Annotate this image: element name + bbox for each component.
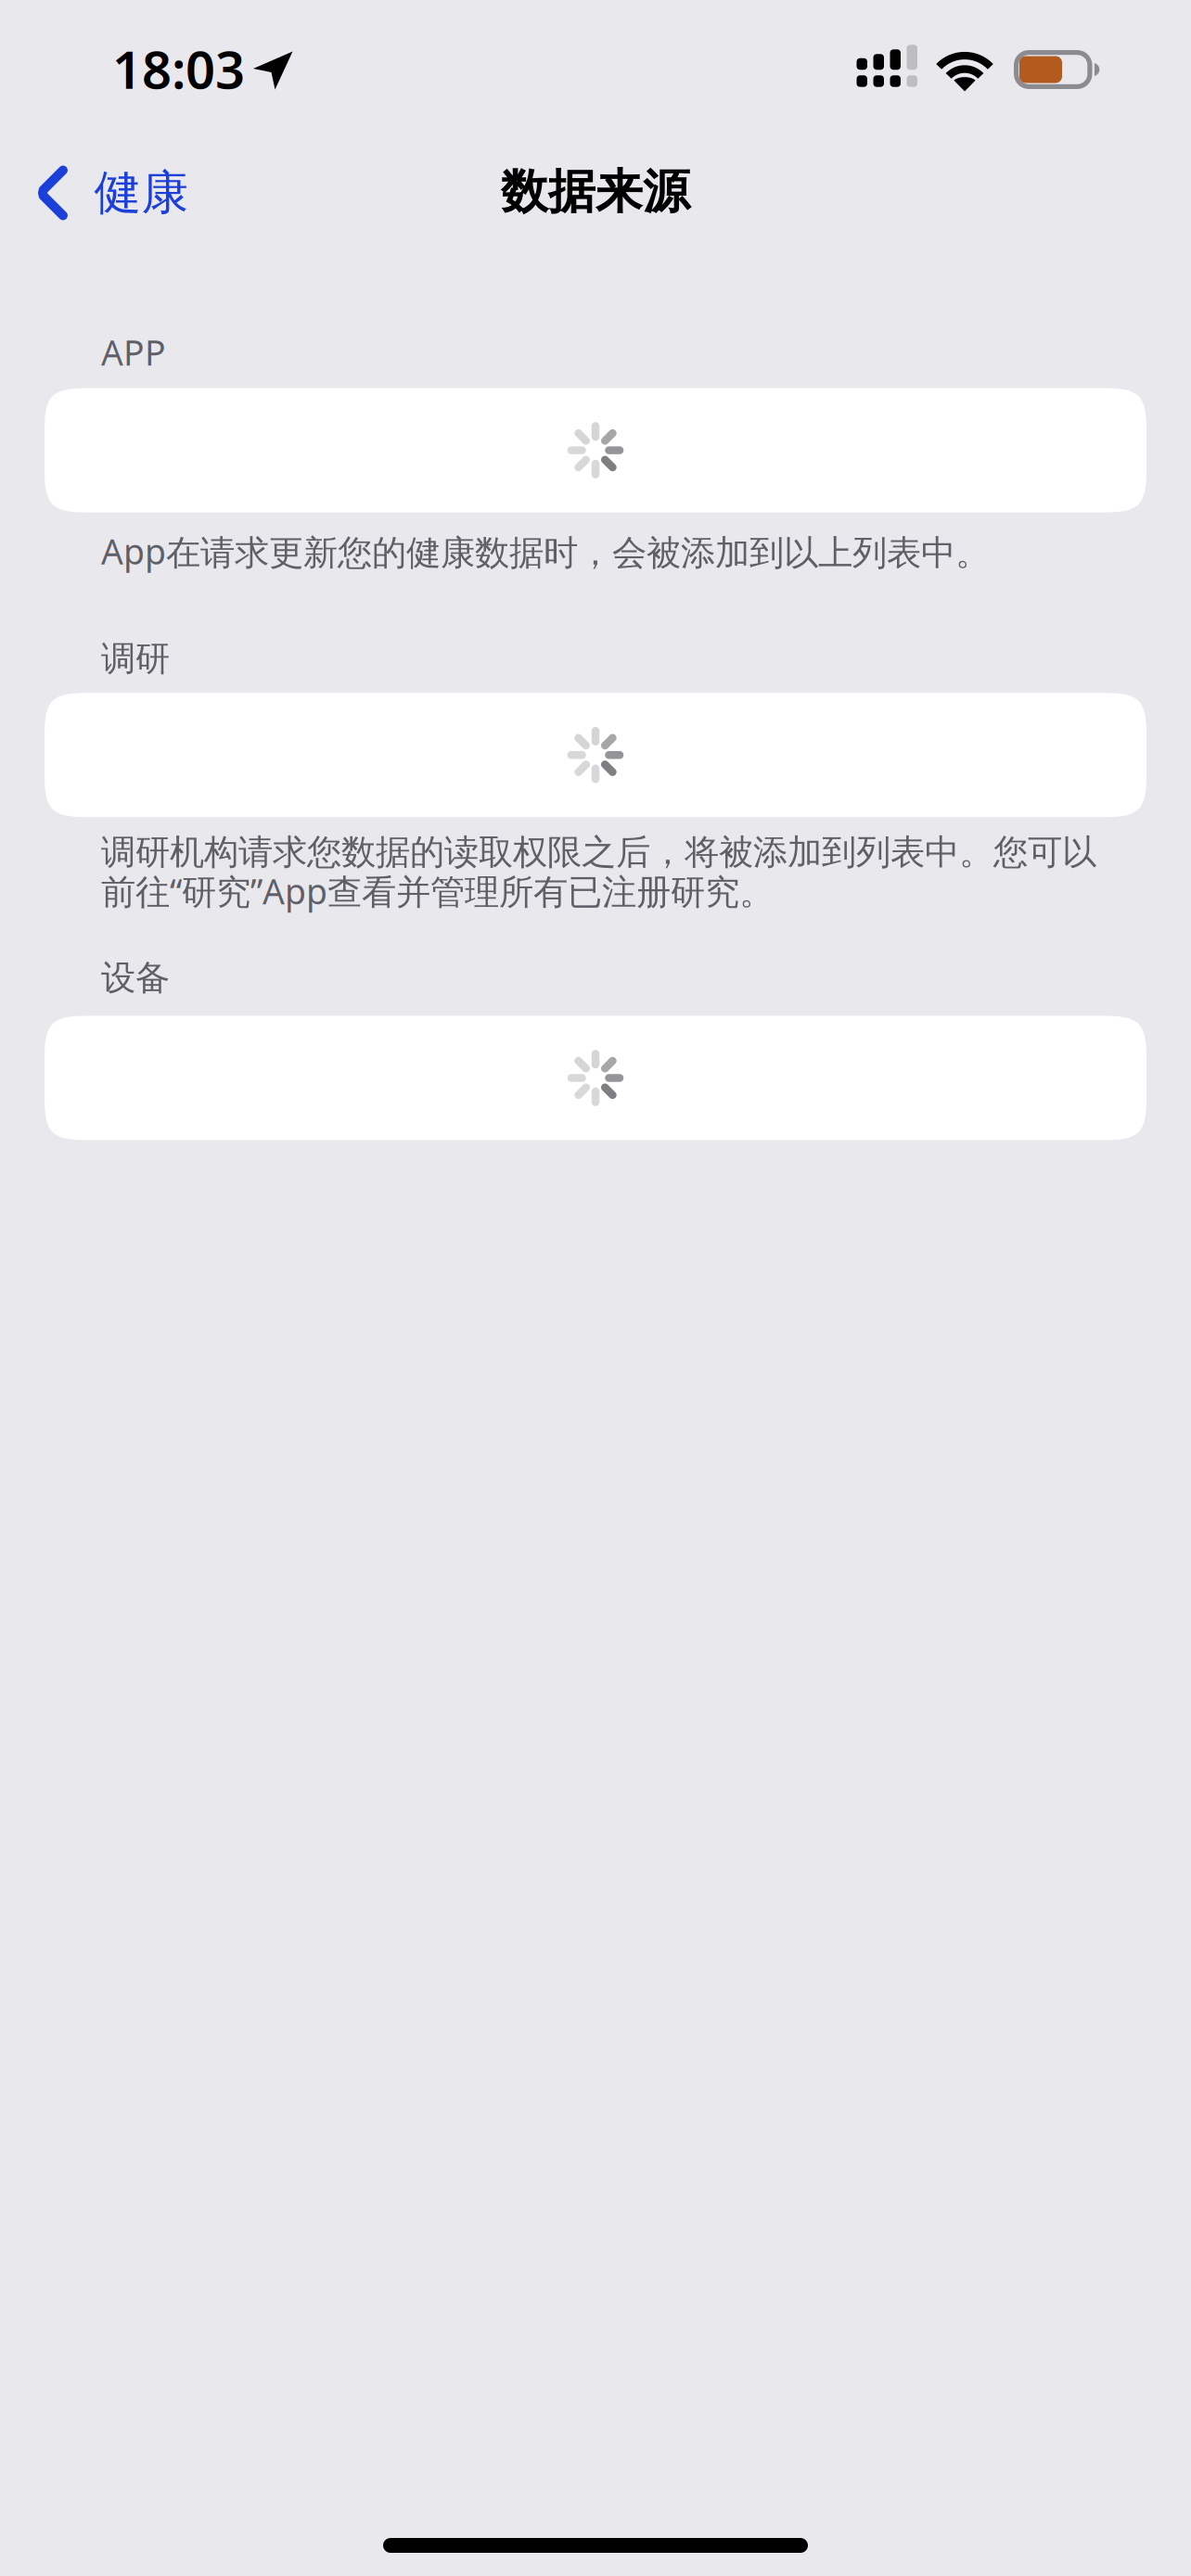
staticText: 调研机构请求您数据的读取权限之后，将被添加到列表中。您可以前往“研究”App查看…: [101, 831, 1096, 914]
staticText: APP: [101, 329, 166, 375]
staticText: 数据来源: [501, 163, 690, 221]
button[interactable]: 健康: [0, 148, 211, 237]
staticText: 18:03: [112, 34, 245, 103]
staticText: 设备: [101, 957, 170, 999]
staticText: 健康: [94, 164, 189, 222]
staticText: 调研: [101, 637, 170, 680]
staticText: App在请求更新您的健康数据时，会被添加到以上列表中。: [101, 528, 990, 574]
